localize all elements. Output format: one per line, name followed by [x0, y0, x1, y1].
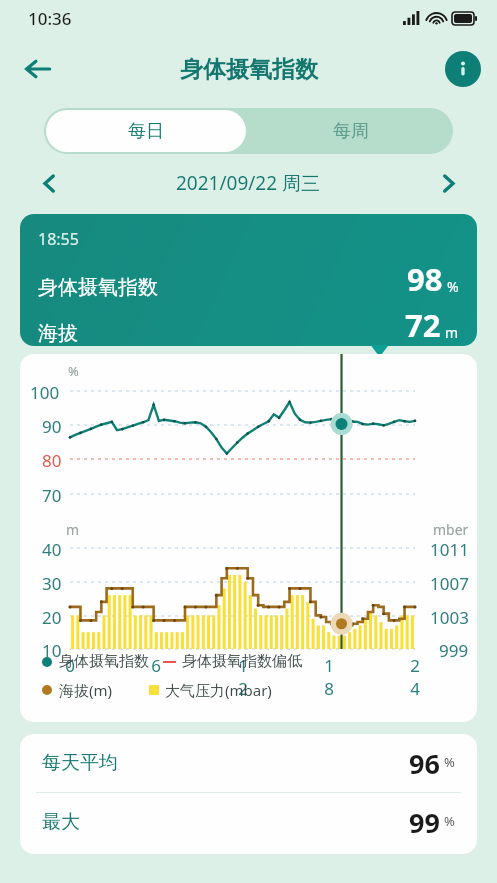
staticText: 10:36 [28, 7, 72, 30]
staticText: 身体摄氧指数 [38, 275, 158, 300]
staticText: 最大 [42, 810, 80, 834]
staticText: 海拔(m) [59, 680, 113, 700]
staticText: % [444, 812, 455, 830]
staticText: 100 [30, 381, 60, 404]
button[interactable]: Back [14, 45, 62, 93]
staticText: 80 [42, 449, 62, 472]
staticText: 6 [147, 654, 165, 677]
staticText: m [66, 520, 80, 539]
staticText: 40 [42, 538, 62, 561]
staticText: 1007 [430, 572, 469, 595]
staticText: 98 [407, 258, 443, 300]
staticText: 10 [42, 639, 62, 662]
staticText: 0 [61, 654, 79, 677]
staticText: 24 [406, 654, 424, 700]
button[interactable]: Previous day [32, 166, 66, 200]
staticText: mber [433, 520, 469, 539]
staticText: 身体摄氧指数偏低 [182, 652, 302, 671]
button[interactable]: 18:55 [20, 214, 477, 346]
staticText: 20 [42, 606, 62, 629]
button[interactable]: 每日 [46, 110, 246, 152]
staticText: 90 [42, 415, 62, 438]
staticText: 99 [409, 804, 440, 841]
staticText: 96 [409, 745, 440, 782]
staticText: 12 [234, 654, 252, 700]
staticText: 身体摄氧指数 [180, 55, 318, 84]
staticText: 1011 [430, 538, 469, 561]
button[interactable]: 每天平均 [42, 734, 455, 792]
staticText: 30 [42, 572, 62, 595]
staticText: 每天平均 [42, 751, 118, 775]
button[interactable]: Next day [431, 166, 465, 200]
staticText: 身体摄氧指数 [59, 652, 149, 671]
staticText: 1003 [430, 606, 469, 629]
staticText: 999 [439, 639, 469, 662]
button[interactable]: % [20, 354, 477, 722]
staticText: % [447, 277, 459, 296]
staticText: % [68, 362, 79, 380]
button[interactable]: 每周 [248, 108, 453, 154]
staticText: 大气压力(mbar) [165, 680, 272, 700]
staticText: 18 [320, 654, 338, 700]
button[interactable]: 最大 [42, 793, 455, 851]
staticText: 18:55 [38, 228, 79, 250]
button[interactable]: Information [445, 51, 481, 87]
staticText: 70 [42, 484, 62, 507]
staticText: 72 [405, 304, 441, 346]
staticText: 2021/09/22 周三 [176, 170, 321, 196]
staticText: 每周 [333, 120, 369, 143]
staticText: m [445, 323, 459, 342]
staticText: 海拔 [38, 321, 78, 346]
staticText: % [444, 753, 455, 771]
staticText: 每日 [128, 120, 164, 143]
